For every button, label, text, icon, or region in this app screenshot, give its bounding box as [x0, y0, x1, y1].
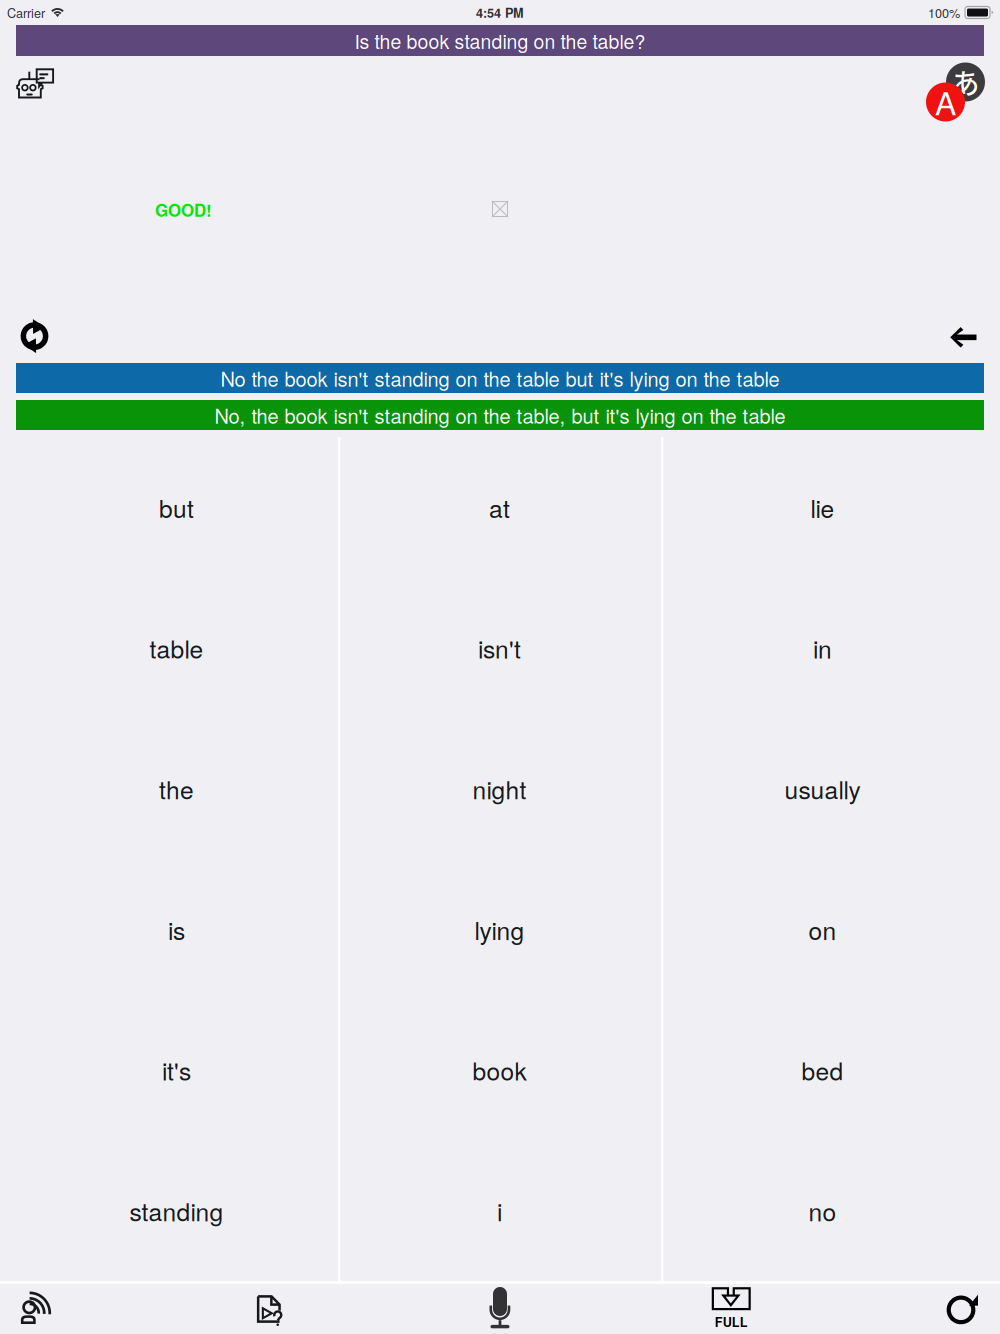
button[interactable]: the [15, 718, 338, 859]
staticText: lying [474, 912, 524, 947]
button[interactable]: but [15, 437, 338, 578]
button[interactable]: bed [661, 1000, 984, 1140]
button[interactable]: Full download [708, 1284, 755, 1334]
staticText: No, the book isn't standing on the table… [214, 401, 785, 429]
button[interactable]: at [338, 437, 661, 578]
button[interactable]: lie [661, 437, 984, 578]
button[interactable]: book [338, 1000, 661, 1140]
staticText: standing [129, 1193, 223, 1228]
button[interactable]: Transcript [245, 1284, 292, 1334]
button[interactable]: in [661, 578, 984, 718]
staticText: FULL [715, 1313, 748, 1331]
staticText: but [159, 490, 194, 525]
button[interactable]: no [661, 1140, 984, 1281]
button[interactable]: i [338, 1140, 661, 1281]
staticText: A [935, 79, 956, 124]
button[interactable]: lying [338, 859, 661, 1000]
staticText: table [149, 630, 203, 665]
image [492, 201, 508, 217]
button[interactable]: on [661, 859, 984, 1000]
button[interactable]: it's [15, 1000, 338, 1140]
staticText: i [497, 1193, 502, 1228]
staticText: Carrier [7, 3, 45, 21]
staticText: book [472, 1052, 526, 1087]
staticText: 4:54 PM [476, 3, 524, 21]
button[interactable]: standing [15, 1140, 338, 1281]
button[interactable]: usually [661, 718, 984, 859]
staticText: GOOD! [155, 198, 212, 222]
button[interactable]: table [15, 578, 338, 718]
staticText: in [813, 630, 832, 665]
staticText: the [159, 771, 194, 806]
staticText: bed [801, 1052, 843, 1087]
button[interactable]: Reload [939, 1284, 986, 1334]
staticText: 100% [928, 3, 960, 21]
button[interactable]: Record [476, 1284, 523, 1334]
button[interactable]: Robot assistant [3, 59, 58, 107]
staticText: it's [162, 1052, 191, 1087]
staticText: night [472, 771, 526, 806]
button[interactable]: is [15, 859, 338, 1000]
button[interactable]: night [338, 718, 661, 859]
staticText: at [489, 490, 510, 525]
staticText: usually [784, 771, 860, 806]
staticText: is [168, 912, 185, 947]
staticText: Is the book standing on the table? [354, 27, 645, 54]
staticText: あ [951, 62, 979, 102]
button[interactable]: Back [938, 315, 988, 359]
staticText: on [808, 912, 836, 947]
button[interactable]: Translate [910, 46, 981, 117]
staticText: lie [810, 490, 834, 525]
button[interactable]: Listen [14, 1284, 61, 1334]
staticText: isn't [478, 630, 521, 665]
staticText: no [808, 1193, 836, 1228]
button[interactable]: isn't [338, 578, 661, 718]
button[interactable]: Repeat [10, 308, 60, 364]
staticText: No the book isn't standing on the table … [220, 364, 779, 392]
